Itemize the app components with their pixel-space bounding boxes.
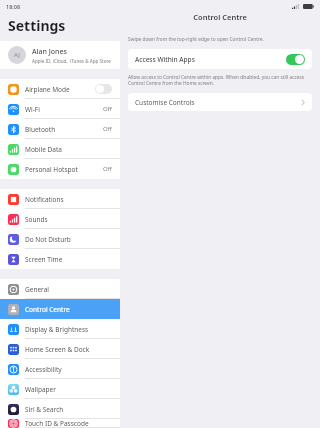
staticText: Siri & Search [25,405,64,414]
staticText: Off [103,165,112,173]
button[interactable]: Control Centre [0,299,120,319]
staticText: Sounds [25,215,48,224]
staticText: Apple ID, iCloud, iTunes & App Store [32,58,111,64]
staticText: Mobile Data [25,145,62,154]
staticText: Settings [8,16,66,35]
staticText: General [25,285,49,294]
staticText: Personal Hotspot [25,165,78,174]
staticText: Alan Jones [32,47,67,57]
staticText: Off [103,105,112,113]
staticText: 18:08 [6,3,21,10]
button[interactable]: Access Within Apps toggle [286,54,305,65]
button[interactable]: Wi-Fi [0,99,120,119]
staticText: Notifications [25,195,64,204]
staticText: Control Centre [25,305,70,314]
staticText: Home Screen & Dock [25,345,90,354]
button[interactable]: Notifications [0,189,120,209]
button[interactable]: Personal Hotspot [0,159,120,179]
button[interactable]: Touch ID & Passcode [0,419,120,428]
staticText: Access Within Apps [135,55,195,64]
button[interactable]: Airplane Mode [0,79,120,99]
button[interactable]: Accessibility [0,359,120,379]
staticText: AJ [14,51,20,59]
button[interactable]: General [0,279,120,299]
staticText: Allow access to Control Centre within ap… [128,74,312,86]
staticText: Swipe down from the top-right edge to op… [128,36,264,43]
staticText: Customise Controls [135,98,195,107]
staticText: Wi-Fi [25,105,40,114]
staticText: Airplane Mode [25,85,70,94]
button[interactable]: Access Within Apps [128,49,312,69]
button[interactable]: Do Not Disturb [0,229,120,249]
staticText: Display & Brightness [25,325,89,334]
button[interactable]: Siri & Search [0,399,120,419]
staticText: Bluetooth [25,125,56,134]
button[interactable]: Home Screen & Dock [0,339,120,359]
button[interactable]: Bluetooth [0,119,120,139]
staticText: Do Not Disturb [25,235,71,244]
button[interactable]: Customise Controls [128,93,312,111]
button[interactable]: Wallpaper [0,379,120,399]
button[interactable]: AJ [0,41,120,69]
staticText: Screen Time [25,255,63,264]
button[interactable]: Airplane Mode toggle [95,84,112,94]
button[interactable]: Screen Time [0,249,120,269]
staticText: Control Centre [120,12,320,22]
staticText: Accessibility [25,365,62,374]
staticText: Off [103,125,112,133]
button[interactable]: Sounds [0,209,120,229]
staticText: Touch ID & Passcode [25,419,89,428]
staticText: Wallpaper [25,385,56,394]
button[interactable]: Display & Brightness [0,319,120,339]
button[interactable]: Mobile Data [0,139,120,159]
